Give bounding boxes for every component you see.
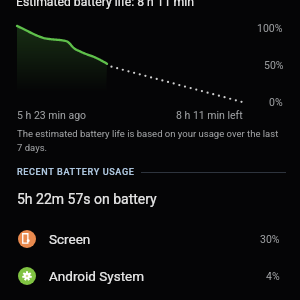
staticText: Screen <box>49 231 91 247</box>
staticText: 30% <box>260 233 280 245</box>
button[interactable]: Screen <box>0 220 300 257</box>
staticText: 100% <box>257 22 283 34</box>
staticText: 50% <box>264 59 284 71</box>
staticText: 0% <box>269 96 283 108</box>
staticText: 5 h 23 min ago <box>17 109 87 121</box>
staticText: 4% <box>266 270 280 282</box>
staticText: The estimated battery life is based on y… <box>17 128 285 154</box>
button[interactable]: Android System <box>0 257 300 294</box>
staticText: 5h 22m 57s on battery <box>17 191 157 207</box>
staticText: 8 h 11 min left <box>176 109 243 121</box>
staticText: Estimated battery life: 8 h 11 min <box>16 0 194 9</box>
staticText: RECENT BATTERY USAGE <box>17 167 135 178</box>
staticText: Android System <box>49 268 145 284</box>
